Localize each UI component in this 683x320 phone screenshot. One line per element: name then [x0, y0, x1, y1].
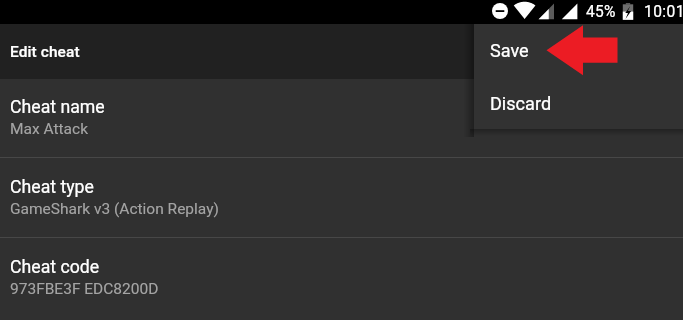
staticText: Save	[490, 40, 529, 61]
staticText: Cheat name	[10, 97, 105, 118]
staticText: GameShark v3 (Action Replay)	[10, 200, 219, 218]
staticText: 10:01	[644, 3, 683, 21]
staticText: Cheat type	[10, 177, 94, 198]
button[interactable]: Cheat code	[0, 238, 683, 317]
staticText: 973FBE3F EDC8200D	[10, 280, 159, 298]
button[interactable]: Cheat type	[0, 158, 683, 237]
button[interactable]: Save	[474, 24, 683, 76]
button[interactable]: Discard	[474, 76, 683, 128]
staticText: Edit cheat	[10, 43, 80, 61]
staticText: 45%	[586, 3, 616, 21]
other: Arrow pointing at Save	[0, 0, 683, 320]
staticText: Discard	[490, 93, 552, 114]
button[interactable]: Edit cheat	[0, 24, 683, 79]
button[interactable]: Cheat name	[0, 78, 683, 157]
staticText: Max Attack	[10, 120, 89, 138]
staticText: Cheat code	[10, 257, 100, 278]
